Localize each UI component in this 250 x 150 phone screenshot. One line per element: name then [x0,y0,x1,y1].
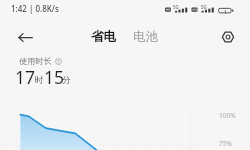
staticText: 电池 [133,29,159,45]
staticText: 时 [35,75,44,86]
staticText: 100% [219,111,236,120]
staticText: 17 [15,65,36,89]
staticText: 1 [224,8,227,15]
staticText: ? [57,58,60,65]
button[interactable]: Help [55,58,62,65]
button[interactable]: 电池 [130,27,162,47]
staticText: 分 [62,75,71,86]
button[interactable]: 省电 [88,27,120,47]
staticText: 省电 [91,29,117,45]
staticText: 使用时长 [19,56,52,66]
button[interactable]: Settings [216,26,239,48]
button[interactable]: Back [13,26,37,48]
staticText: 1:42 | 0.8K/s [11,3,59,14]
staticText: 5G [201,4,207,10]
staticText: 75% [219,139,232,148]
staticText: 5G [173,4,179,10]
staticText: 15 [44,65,65,89]
